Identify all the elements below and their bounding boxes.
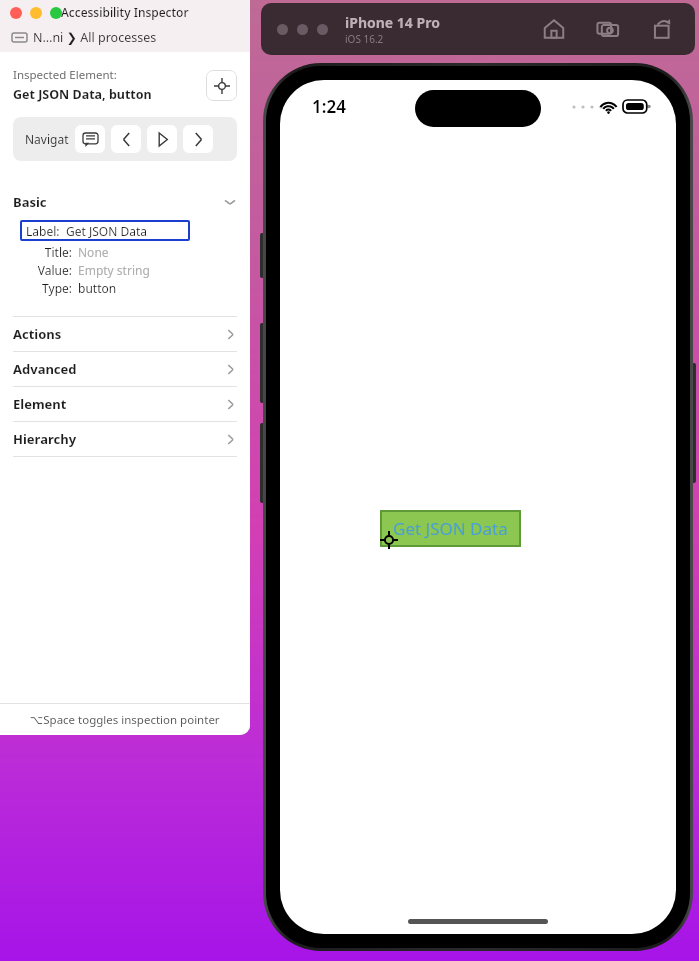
staticText: Hierarchy [13, 430, 224, 448]
staticText: Get JSON Data [66, 223, 147, 239]
staticText: None [78, 244, 109, 260]
button[interactable]: Window control [317, 24, 328, 35]
button[interactable]: Element [13, 387, 237, 421]
button[interactable]: Window control [297, 24, 308, 35]
staticText: Actions [13, 325, 224, 343]
button[interactable]: Zoom [50, 7, 62, 19]
staticText: Label: [26, 223, 60, 239]
button[interactable]: Start inspection pointer [206, 70, 237, 101]
staticText: Get JSON Data [393, 517, 508, 540]
staticText: Element [13, 395, 224, 413]
staticText: Get JSON Data, button [13, 86, 152, 103]
button[interactable]: Type: [26, 280, 237, 296]
button[interactable]: N…ni ❯ All processes [33, 29, 157, 46]
button[interactable]: Label: [20, 220, 190, 241]
staticText: button [78, 280, 117, 296]
staticText: iPhone 14 Pro [345, 13, 440, 32]
button[interactable]: Get JSON Data [380, 510, 521, 547]
staticText: Inspected Element: [13, 67, 117, 83]
button[interactable]: Previous [111, 125, 141, 153]
button[interactable]: Record [647, 14, 677, 44]
button[interactable]: Speak [75, 125, 105, 153]
staticText: Title: [44, 244, 72, 260]
button[interactable]: Actions [13, 317, 237, 351]
button[interactable]: Play [147, 125, 177, 153]
button[interactable]: Advanced [13, 352, 237, 386]
staticText: Basic [13, 193, 223, 211]
button[interactable]: Window control [277, 24, 288, 35]
button[interactable]: Value: [26, 262, 237, 278]
staticText: Accessibility Inspector [61, 4, 189, 20]
button[interactable]: Title: [26, 244, 237, 260]
staticText: Value: [37, 262, 72, 278]
staticText: Empty string [78, 262, 150, 278]
button[interactable]: Close [10, 7, 22, 19]
staticText: Navigat [25, 131, 69, 147]
staticText: Advanced [13, 360, 224, 378]
button[interactable]: Next [183, 125, 213, 153]
button[interactable]: Screenshot [593, 14, 623, 44]
staticText: ⌥Space toggles inspection pointer [30, 712, 220, 728]
button[interactable]: Hierarchy [13, 422, 237, 456]
staticText: iOS 16.2 [345, 32, 384, 46]
staticText: Type: [42, 280, 72, 296]
button[interactable]: Minimize [30, 7, 42, 19]
button[interactable]: Basic [13, 193, 237, 211]
staticText: 1:24 [312, 95, 346, 118]
button[interactable]: Home [539, 14, 569, 44]
